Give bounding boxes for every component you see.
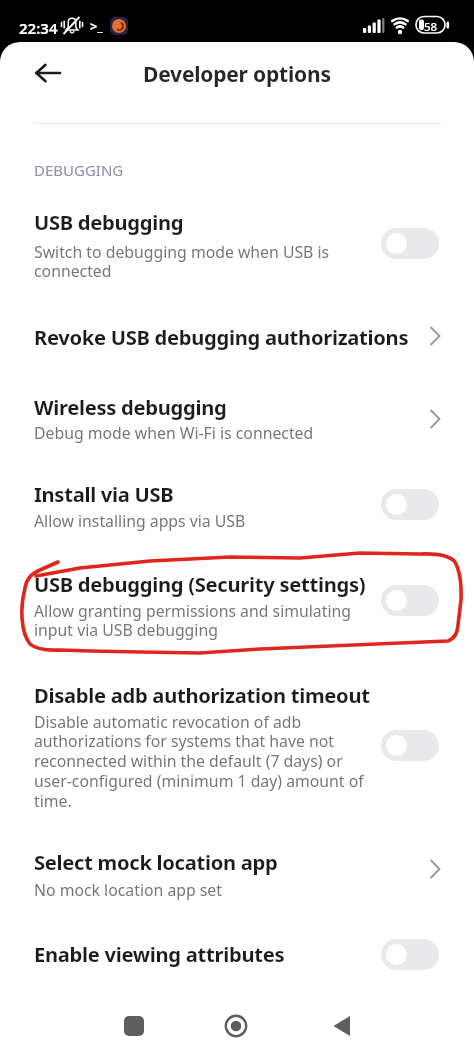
button[interactable] <box>0 929 474 981</box>
staticText: DEBUGGING <box>34 160 454 180</box>
button[interactable] <box>0 198 474 297</box>
button[interactable] <box>381 489 439 520</box>
staticText: Select mock location app <box>34 848 454 876</box>
staticText: Revoke USB debugging authorizations <box>34 323 454 351</box>
button[interactable] <box>0 670 474 829</box>
button[interactable] <box>0 559 474 651</box>
staticText: Developer options <box>143 60 331 89</box>
staticText: Disable adb authorization timeout <box>34 681 454 709</box>
staticText: >_ <box>90 17 103 35</box>
button[interactable] <box>0 837 474 912</box>
staticText: Enable viewing attributes <box>34 940 454 968</box>
staticText: USB debugging (Security settings) <box>34 570 454 598</box>
staticText: Allow installing apps via USB <box>34 510 406 532</box>
staticText: 58 <box>424 19 438 35</box>
button[interactable] <box>0 312 474 365</box>
staticText: Switch to debugging mode when USB is con… <box>34 241 406 282</box>
button[interactable] <box>381 730 439 761</box>
button[interactable] <box>114 1006 154 1046</box>
staticText: Allow granting permissions and simulatin… <box>34 600 406 641</box>
button[interactable] <box>35 64 62 82</box>
button[interactable] <box>381 228 439 259</box>
staticText: Disable automatic revocation of adb auth… <box>34 711 406 812</box>
button[interactable] <box>322 1006 362 1046</box>
button[interactable] <box>381 585 439 616</box>
staticText: USB debugging <box>34 208 454 236</box>
staticText: Install via USB <box>34 480 454 508</box>
button[interactable] <box>0 383 474 459</box>
staticText: No mock location app set <box>34 879 406 901</box>
staticText: Debug mode when Wi-Fi is connected <box>34 422 406 444</box>
button[interactable] <box>381 939 439 970</box>
staticText: 22:34 <box>19 18 58 38</box>
staticText: Wireless debugging <box>34 393 454 421</box>
button[interactable] <box>0 469 474 547</box>
button[interactable] <box>216 1006 256 1046</box>
